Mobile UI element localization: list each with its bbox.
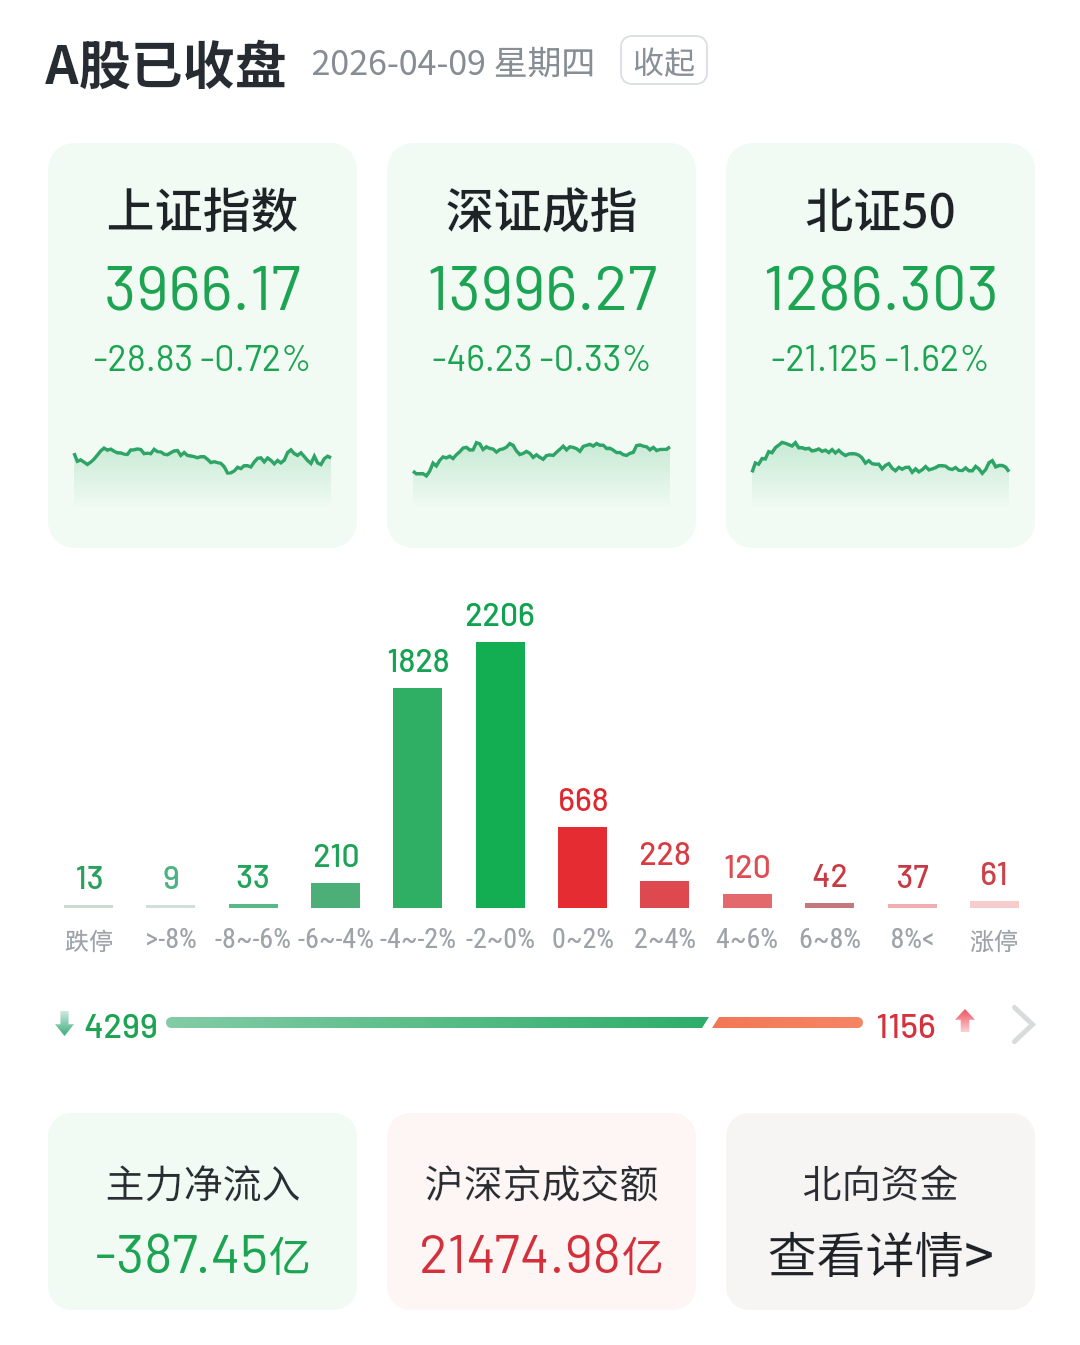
staticText: -46.23 -0.33% (432, 335, 652, 378)
staticText: -387.45 (95, 1219, 268, 1284)
staticText: 2~4% (634, 922, 696, 954)
staticText: 跌停 (65, 922, 113, 954)
staticText: -21.125 -1.62% (771, 335, 990, 378)
button[interactable]: 跌停 13 (47, 853, 129, 956)
button[interactable]: >-8% 9 (130, 853, 212, 956)
staticText: 沪深京成交额 (424, 1153, 659, 1209)
staticText: -28.83 -0.72% (93, 335, 312, 378)
button[interactable]: 上证指数 (48, 143, 357, 548)
staticText: 61 (980, 853, 1008, 891)
staticText: -4~-2% (380, 922, 456, 954)
staticText: A股已收盘 (45, 24, 287, 96)
staticText: 4299 (84, 1004, 158, 1045)
staticText: 21474.98 (419, 1219, 621, 1284)
button[interactable]: 6~8% 42 (788, 851, 870, 956)
button[interactable]: -6~-4% 210 (294, 831, 376, 956)
staticText: 120 (724, 846, 771, 884)
staticText: 主力净流入 (105, 1153, 301, 1209)
staticText: -8~-6% (215, 922, 291, 954)
staticText: 2026-04-09 星期四 (311, 36, 596, 85)
staticText: 2206 (465, 594, 535, 632)
button[interactable]: 主力净流入 (48, 1113, 357, 1310)
staticText: 查看详情 (767, 1216, 964, 1287)
staticText: 33 (236, 856, 270, 894)
staticText: 37 (896, 856, 929, 894)
button[interactable]: -8~-6% 33 (212, 852, 294, 956)
button[interactable]: 涨跌家数 4299 下跌 1156 上涨 (40, 996, 1040, 1052)
staticText: 1828 (387, 640, 450, 678)
staticText: 13 (75, 857, 104, 895)
button[interactable]: 更多 (996, 999, 1050, 1049)
staticText: 210 (313, 835, 360, 873)
staticText: 4~6% (716, 922, 778, 954)
staticText: 6~8% (799, 922, 861, 954)
staticText: 1156 (876, 1004, 936, 1045)
button[interactable]: 8%< 37 (871, 852, 953, 956)
staticText: 42 (812, 855, 848, 893)
staticText: 亿 (621, 1223, 664, 1284)
staticText: 0~2% (552, 922, 614, 954)
staticText: 1286.303 (763, 248, 999, 322)
button[interactable]: 北证50 (726, 143, 1035, 548)
button[interactable]: 沪深京成交额 (387, 1113, 696, 1310)
staticText: 228 (639, 833, 691, 871)
button[interactable]: 涨停 61 (953, 849, 1035, 956)
button[interactable]: -4~-2% 1828 (377, 636, 459, 956)
staticText: -6~-4% (298, 922, 374, 954)
button[interactable]: 0~2% 668 (541, 775, 623, 956)
staticText: 北证50 (805, 172, 956, 242)
staticText: 北向资金 (802, 1153, 959, 1209)
button[interactable]: -2~0% 2206 (459, 590, 541, 956)
button[interactable]: 4~6% 120 (706, 842, 788, 956)
button[interactable]: 深证成指 (387, 143, 696, 548)
staticText: 8%< (890, 922, 935, 954)
staticText: 3966.17 (104, 248, 301, 322)
button[interactable]: 2~4% 228 (624, 829, 706, 956)
staticText: >-8% (145, 922, 197, 954)
staticText: 13996.27 (427, 248, 657, 322)
staticText: 上证指数 (106, 172, 299, 242)
staticText: 深证成指 (445, 172, 638, 242)
staticText: 收起 (633, 38, 695, 83)
button[interactable]: 收起 (620, 35, 708, 85)
staticText: 涨停 (970, 922, 1018, 954)
staticText: -2~0% (466, 922, 535, 954)
button[interactable]: 北向资金 (726, 1113, 1035, 1310)
staticText: 668 (558, 779, 609, 817)
staticText: 亿 (268, 1223, 311, 1284)
staticText: 9 (163, 857, 180, 895)
staticText: > (964, 1214, 994, 1289)
